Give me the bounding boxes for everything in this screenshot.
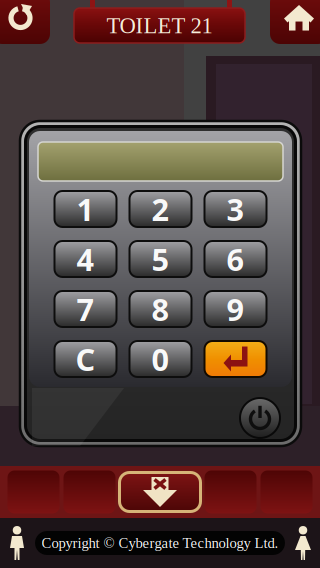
button[interactable]: 6 [204,241,266,277]
staticText: TOILET 21 [106,13,212,38]
button[interactable]: Home [270,0,320,44]
button[interactable]: Close inventory [119,472,200,511]
button[interactable]: 0 [129,341,191,377]
staticText: 7 [76,289,94,329]
button[interactable]: Restart [0,0,50,44]
button[interactable]: TOILET 21 [74,8,245,43]
button[interactable]: Enter [204,341,266,377]
staticText: 2 [151,189,169,229]
button[interactable]: 5 [129,241,191,277]
staticText: 4 [76,239,94,279]
staticText: 0 [151,339,169,379]
staticText: 3 [226,189,244,229]
staticText: C [75,339,95,379]
button[interactable]: 3 [204,191,266,227]
staticText: 1 [76,189,94,229]
staticText: 9 [226,289,244,329]
staticText: 8 [151,289,169,329]
button[interactable]: 8 [129,291,191,327]
button[interactable]: 9 [204,291,266,327]
staticText: 6 [226,239,244,279]
button[interactable]: 7 [54,291,116,327]
staticText: Copyright © Cybergate Technology Ltd. [41,535,278,551]
button[interactable]: 4 [54,241,116,277]
button[interactable]: C [54,341,116,377]
button[interactable]: 2 [129,191,191,227]
button[interactable]: 1 [54,191,116,227]
staticText: 5 [151,239,169,279]
